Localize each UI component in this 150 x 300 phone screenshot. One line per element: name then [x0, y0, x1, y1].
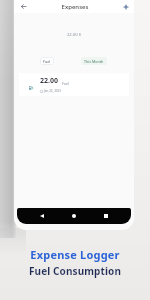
button[interactable]: This Month	[81, 57, 107, 65]
staticText: Fuel	[43, 59, 51, 64]
button[interactable]: 22.00	[19, 73, 129, 96]
button[interactable]: Back	[35, 209, 49, 223]
staticText: Expenses	[32, 3, 118, 11]
staticText: 22.00	[40, 76, 58, 86]
button[interactable]: Home	[67, 209, 81, 223]
staticText: Fuel	[62, 81, 70, 86]
button[interactable]: Back	[14, 0, 32, 13]
staticText: Jan 23, 2023	[44, 89, 62, 93]
button[interactable]: Fuel	[40, 57, 54, 65]
button[interactable]: Add expense	[118, 0, 134, 13]
staticText: 22.00 $	[14, 32, 134, 38]
staticText: This Month	[84, 59, 104, 64]
staticText: Fuel Consumption	[29, 264, 121, 278]
button[interactable]: Recent apps	[99, 209, 113, 223]
staticText: Expense Logger	[30, 247, 120, 262]
